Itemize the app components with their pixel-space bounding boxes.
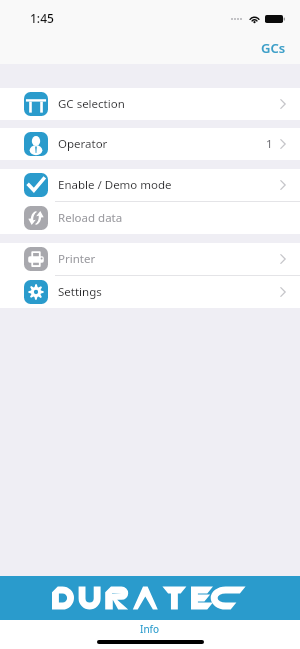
button[interactable]: GCs: [245, 38, 300, 63]
staticText: Settings: [58, 284, 102, 300]
staticText: Info: [140, 622, 160, 636]
staticText: Reload data: [58, 210, 123, 226]
staticText: Printer: [58, 251, 96, 267]
button[interactable]: Enable / Demo mode: [0, 169, 300, 201]
staticText: 1: [266, 136, 273, 152]
button[interactable]: DURATEC: [0, 576, 300, 620]
button[interactable]: Settings: [0, 276, 300, 308]
staticText: Operator: [58, 136, 108, 152]
button[interactable]: GC selection: [0, 88, 300, 120]
staticText: Enable / Demo mode: [58, 177, 172, 193]
staticText: GCs: [261, 39, 286, 57]
button[interactable]: Reload data: [0, 202, 300, 234]
button[interactable]: Operator: [0, 128, 300, 160]
button[interactable]: Info: [124, 620, 176, 638]
staticText: 1:45: [30, 10, 54, 26]
button[interactable]: Printer: [0, 243, 300, 275]
staticText: GC selection: [58, 96, 125, 112]
